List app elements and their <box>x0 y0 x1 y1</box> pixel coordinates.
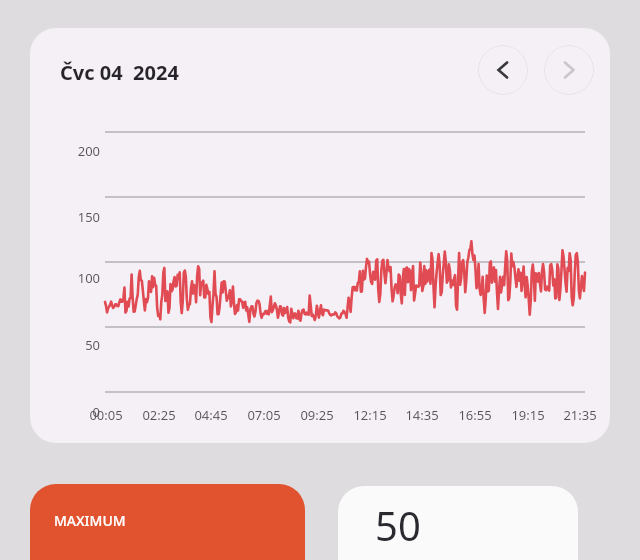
button[interactable]: MAXIMUM <box>30 484 305 560</box>
button[interactable]: Next day <box>544 45 594 95</box>
staticText: 14:35 <box>394 406 450 424</box>
staticText: 50 <box>375 498 421 552</box>
staticText: 12:15 <box>342 406 398 424</box>
staticText: 16:55 <box>447 406 503 424</box>
staticText: Čvc 04 2024 <box>60 59 179 86</box>
staticText: 100 <box>38 269 100 287</box>
staticText: 50 <box>38 336 100 354</box>
staticText: 00:05 <box>78 406 134 424</box>
staticText: 21:35 <box>552 406 608 424</box>
staticText: 04:45 <box>183 406 239 424</box>
staticText: 19:15 <box>500 406 556 424</box>
button[interactable]: 50 <box>338 486 578 560</box>
staticText: 07:05 <box>236 406 292 424</box>
staticText: MAXIMUM <box>54 511 126 530</box>
staticText: 02:25 <box>131 406 187 424</box>
staticText: 09:25 <box>289 406 345 424</box>
staticText: 0 <box>38 403 100 421</box>
button[interactable]: Previous day <box>478 45 528 95</box>
staticText: 150 <box>38 208 100 226</box>
staticText: 200 <box>38 142 100 160</box>
